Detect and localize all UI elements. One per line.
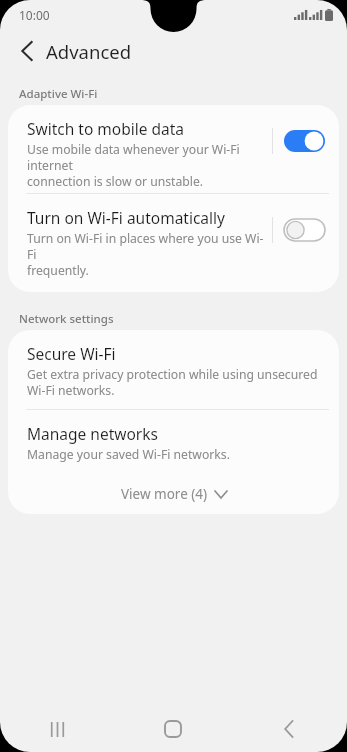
staticText: Network settings — [19, 311, 114, 327]
button[interactable]: Back — [231, 706, 347, 752]
staticText: Turn on Wi-Fi automatically — [27, 207, 225, 228]
staticText: Manage your saved Wi-Fi networks. — [27, 446, 230, 463]
button[interactable]: Secure Wi-Fi — [8, 330, 339, 409]
staticText: 10:00 — [19, 7, 50, 23]
staticText: View more (4) — [121, 485, 208, 503]
button[interactable]: Off — [284, 219, 325, 241]
button[interactable]: Manage networks — [8, 410, 339, 474]
button[interactable]: On — [284, 130, 325, 152]
staticText: Get extra privacy protection while using… — [27, 366, 318, 398]
button[interactable]: Turn on Wi-Fi automatically — [8, 194, 339, 282]
staticText: Turn on Wi-Fi in places where you use Wi… — [27, 230, 264, 278]
staticText: Adaptive Wi-Fi — [19, 86, 98, 102]
staticText: Advanced — [46, 39, 132, 64]
button[interactable]: Switch to mobile data — [8, 105, 339, 193]
button[interactable]: Home — [115, 706, 231, 752]
button[interactable]: View more (4) — [8, 474, 339, 514]
staticText: Secure Wi-Fi — [27, 343, 116, 364]
button[interactable]: Back — [10, 34, 44, 68]
staticText: Manage networks — [27, 423, 158, 444]
staticText: Use mobile data whenever your Wi-Fi inte… — [27, 141, 264, 189]
staticText: Switch to mobile data — [27, 118, 185, 139]
button[interactable]: Recents — [0, 706, 115, 752]
